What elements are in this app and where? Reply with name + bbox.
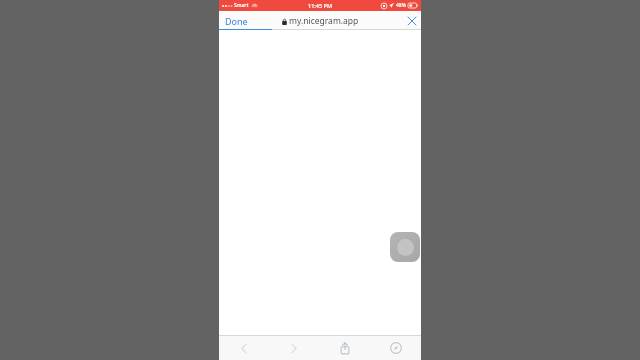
button[interactable]: Forward	[269, 336, 319, 360]
staticText: 11:45 PM	[308, 2, 332, 9]
button[interactable]: Assistive touch	[390, 232, 420, 262]
staticText: my.nicegram.app	[289, 15, 359, 27]
staticText: Done	[225, 15, 248, 27]
staticText: 48%	[396, 2, 406, 9]
button[interactable]: Share	[319, 336, 370, 360]
button[interactable]: Close	[402, 11, 421, 30]
staticText: Smart	[234, 2, 249, 9]
button[interactable]: Open in Safari	[370, 336, 421, 360]
button[interactable]: Back	[219, 336, 269, 360]
button[interactable]: Done	[219, 11, 254, 30]
